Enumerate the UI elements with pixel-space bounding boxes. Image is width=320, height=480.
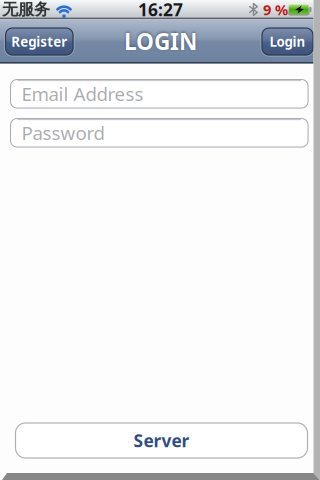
staticText: Email Address — [22, 81, 144, 106]
staticText: 16:27 — [138, 0, 183, 21]
staticText: Register — [11, 32, 67, 51]
button[interactable]: Server — [15, 423, 307, 458]
button[interactable]: Login — [262, 28, 313, 55]
staticText: LOGIN — [124, 26, 197, 57]
button[interactable]: Register — [5, 28, 73, 55]
staticText: 9 % — [263, 0, 288, 19]
staticText: Server — [133, 429, 189, 452]
staticText: Password — [22, 120, 105, 145]
staticText: 无服务 — [2, 0, 50, 20]
button[interactable]: Password — [11, 119, 308, 147]
button[interactable]: Email Address — [11, 79, 308, 108]
staticText: Login — [269, 32, 305, 51]
